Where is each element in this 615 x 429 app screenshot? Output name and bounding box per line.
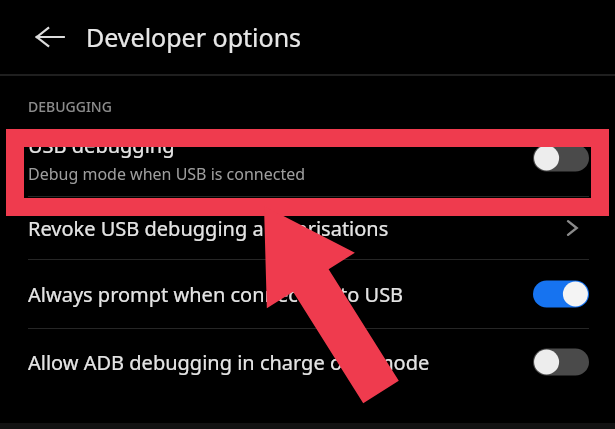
button[interactable]: Toggle off (533, 345, 589, 379)
staticText: USB debugging (28, 132, 175, 159)
button[interactable]: Toggle on (533, 277, 589, 311)
other: Open (555, 211, 589, 245)
button[interactable]: Allow ADB debugging in charge only mode (0, 329, 615, 395)
staticText: Allow ADB debugging in charge only mode (28, 349, 430, 376)
staticText: Developer options (86, 20, 302, 54)
staticText: Revoke USB debugging authorisations (28, 215, 389, 242)
button[interactable]: USB debugging (0, 120, 615, 196)
staticText: Debug mode when USB is connected (28, 163, 306, 185)
button[interactable]: Toggle off (533, 141, 589, 175)
button[interactable]: Back (24, 11, 76, 63)
button[interactable]: Revoke USB debugging authorisations (0, 197, 615, 259)
staticText: DEBUGGING (28, 97, 112, 116)
button[interactable]: Always prompt when connecting to USB (0, 260, 615, 328)
staticText: Always prompt when connecting to USB (28, 281, 404, 308)
